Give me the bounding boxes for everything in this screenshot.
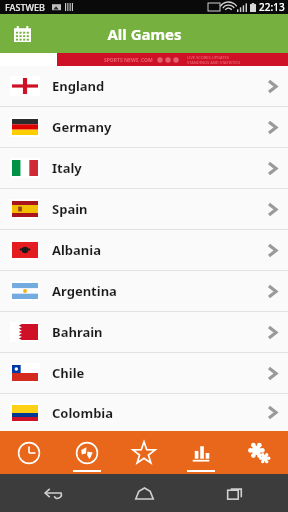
- button[interactable]: Settings: [231, 431, 287, 474]
- staticText: Germany: [52, 118, 267, 136]
- staticText: Colombia: [52, 404, 267, 422]
- button[interactable]: Bahrain: [0, 312, 288, 353]
- staticText: Albania: [52, 241, 267, 259]
- staticText: 22:13: [259, 0, 285, 14]
- button[interactable]: Home: [127, 476, 161, 510]
- button[interactable]: Calendar: [8, 20, 36, 48]
- button[interactable]: Spain: [0, 189, 288, 230]
- button[interactable]: Recents: [218, 476, 252, 510]
- button[interactable]: Favorites: [116, 431, 172, 474]
- button[interactable]: All Games: [59, 431, 115, 474]
- button[interactable]: England: [0, 66, 288, 107]
- staticText: All Games: [107, 24, 182, 44]
- button[interactable]: Back: [36, 476, 70, 510]
- button[interactable]: Germany: [0, 107, 288, 148]
- staticText: Chile: [52, 364, 267, 382]
- staticText: Bahrain: [52, 323, 267, 341]
- staticText: Italy: [52, 159, 267, 177]
- staticText: STANDINGS AND STATISTICS: [187, 60, 241, 65]
- staticText: SPORTS NEWS .COM: [104, 57, 153, 64]
- button[interactable]: Albania: [0, 230, 288, 271]
- button[interactable]: Recent: [1, 431, 57, 474]
- button[interactable]: Colombia: [0, 394, 288, 431]
- staticText: Spain: [52, 200, 267, 218]
- staticText: Argentina: [52, 282, 267, 300]
- button[interactable]: Chile: [0, 353, 288, 394]
- button[interactable]: Argentina: [0, 271, 288, 312]
- staticText: England: [52, 77, 267, 95]
- button[interactable]: Statistics: [173, 431, 229, 474]
- button[interactable]: Italy: [0, 148, 288, 189]
- staticText: FASTWEB: [5, 1, 45, 13]
- staticText: LIVE SCORES UPDATES: [187, 55, 229, 60]
